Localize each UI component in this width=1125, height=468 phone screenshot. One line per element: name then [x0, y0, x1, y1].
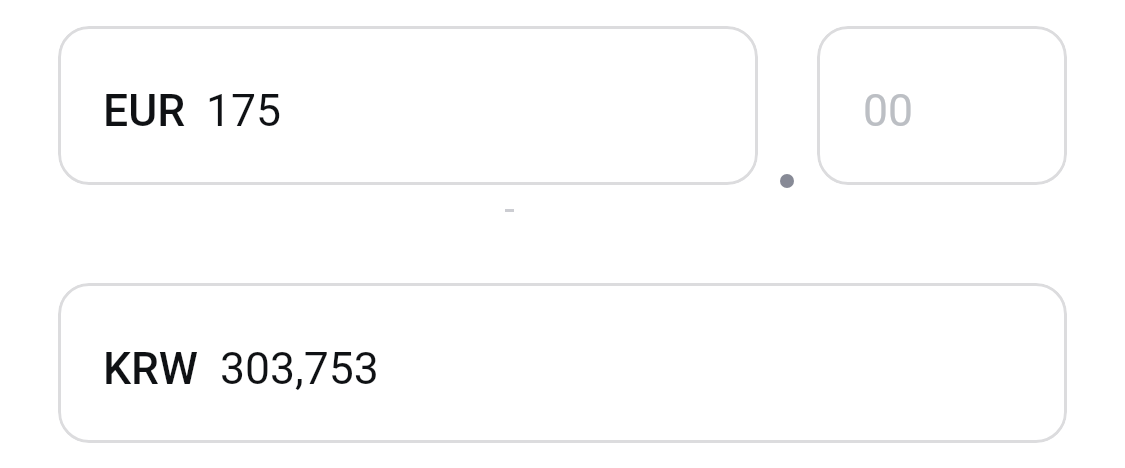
other: Decimal separator: [780, 174, 794, 188]
staticText: EUR: [103, 85, 185, 137]
button[interactable]: Decimal places, 00: [817, 26, 1067, 185]
staticText: 303,753: [220, 343, 379, 395]
staticText: KRW: [103, 343, 199, 395]
staticText: 00: [863, 85, 914, 137]
staticText: 175: [206, 85, 282, 137]
button[interactable]: Converted amount in KRW, 303,753: [58, 283, 1067, 443]
button[interactable]: Amount in EUR, 175: [58, 26, 758, 185]
